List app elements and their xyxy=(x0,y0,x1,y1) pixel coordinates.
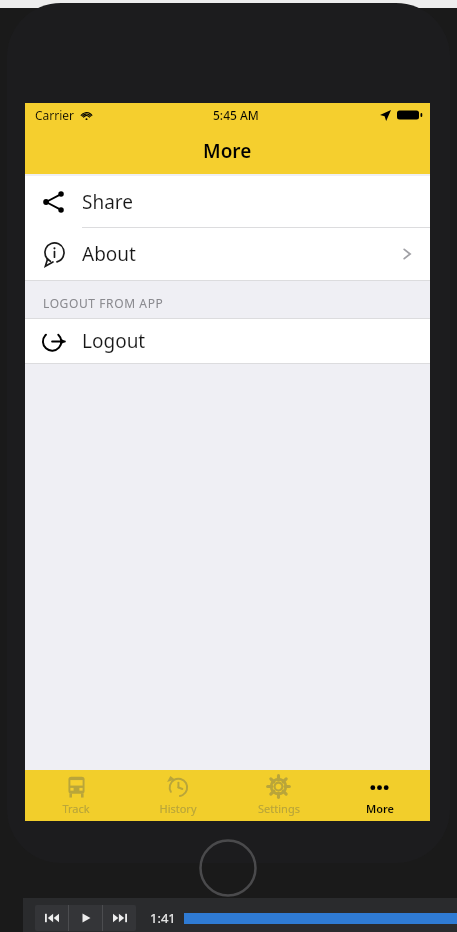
button[interactable]: Logout xyxy=(25,318,430,364)
button[interactable]: Player control xyxy=(69,905,102,931)
staticText: 5:45 AM xyxy=(213,107,259,123)
other: Track xyxy=(65,775,88,798)
other: History xyxy=(166,775,189,798)
button[interactable]: Player control xyxy=(103,905,136,931)
staticText: Carrier xyxy=(35,107,75,123)
other: Settings xyxy=(267,775,290,798)
button[interactable]: Player control xyxy=(35,905,68,931)
staticText: Track xyxy=(62,801,90,816)
staticText: Share xyxy=(82,189,134,215)
button[interactable]: About xyxy=(25,228,430,280)
button[interactable]: Share xyxy=(25,176,430,228)
staticText: History xyxy=(159,801,197,816)
button[interactable]: More xyxy=(329,770,430,821)
staticText: More xyxy=(366,801,394,816)
staticText: More xyxy=(203,138,252,164)
staticText: LOGOUT FROM APP xyxy=(43,295,164,311)
staticText: About xyxy=(82,241,136,267)
staticText: 1:41 xyxy=(150,909,176,927)
staticText: Settings xyxy=(258,801,300,816)
other: More xyxy=(368,775,391,798)
button[interactable]: Track xyxy=(25,770,127,821)
button[interactable]: History xyxy=(127,770,228,821)
button[interactable]: Settings xyxy=(228,770,329,821)
staticText: Logout xyxy=(82,328,146,354)
